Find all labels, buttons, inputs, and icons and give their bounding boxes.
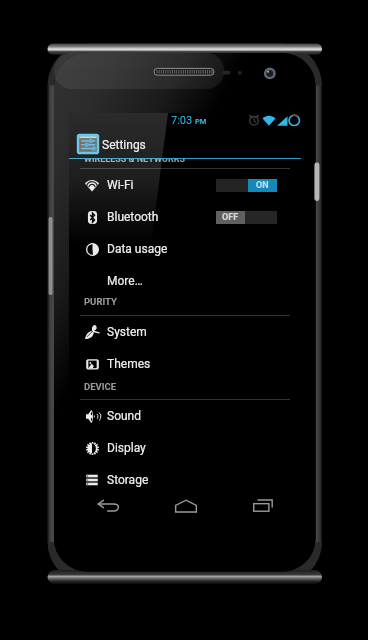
staticText: 7:03 xyxy=(171,114,193,127)
staticText: Sound xyxy=(107,409,141,423)
staticText: PURITY xyxy=(84,296,117,307)
staticText: Themes xyxy=(107,357,151,371)
staticText: PM xyxy=(195,117,207,126)
staticText: OFF xyxy=(222,212,239,223)
button[interactable]: ON xyxy=(216,179,277,192)
staticText: WIRELESS & NETWORKS xyxy=(84,159,185,165)
staticText: More… xyxy=(107,274,143,288)
button[interactable]: Sound xyxy=(69,400,301,432)
button[interactable]: Themes xyxy=(69,348,301,380)
button[interactable]: Display xyxy=(69,432,301,464)
staticText: Data usage xyxy=(107,242,168,256)
button[interactable]: Wi-Fi xyxy=(69,169,301,201)
button[interactable]: Back xyxy=(69,487,147,524)
staticText: Storage xyxy=(107,473,149,487)
button[interactable]: Storage xyxy=(69,464,301,496)
staticText: Display xyxy=(107,441,146,455)
button[interactable]: More… xyxy=(69,265,301,297)
staticText: DEVICE xyxy=(84,381,117,392)
button[interactable]: Data usage xyxy=(69,233,301,265)
staticText: Wi-Fi xyxy=(107,178,134,192)
button[interactable]: Bluetooth xyxy=(69,201,301,233)
staticText: ON xyxy=(256,180,269,191)
staticText: Bluetooth xyxy=(107,210,159,224)
staticText: Settings xyxy=(102,138,146,152)
button[interactable]: Settings app icon xyxy=(78,135,98,153)
button[interactable]: Home xyxy=(147,487,224,524)
staticText: System xyxy=(107,325,147,339)
button[interactable]: Recent apps xyxy=(224,487,301,524)
button[interactable]: System xyxy=(69,316,301,348)
button[interactable]: OFF xyxy=(216,211,277,224)
